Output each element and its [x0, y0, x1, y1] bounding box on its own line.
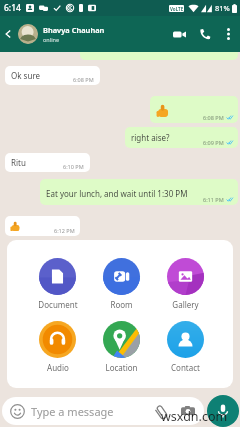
button[interactable]: Room [89, 258, 153, 310]
staticText: 6:10 PM [63, 163, 84, 170]
button[interactable]: Record voice message [207, 395, 239, 427]
button[interactable]: Video call [166, 21, 192, 47]
button[interactable]: Back [0, 25, 18, 43]
button[interactable]: Call [192, 21, 218, 47]
button[interactable]: Attach [151, 401, 171, 421]
staticText: Ritu [11, 157, 26, 168]
button[interactable]: Audio [26, 321, 89, 373]
staticText: Eat your lunch, and wait until 1:30 PM [46, 188, 188, 199]
button[interactable]: Location [89, 321, 153, 373]
staticText: VoLTE [170, 6, 184, 12]
staticText: Audio [47, 362, 69, 373]
staticText: 6:14 [4, 2, 21, 14]
staticText: 6:11 PM [203, 196, 224, 203]
button[interactable]: Camera [178, 401, 198, 421]
staticText: Location [105, 362, 138, 373]
staticText: right aise? [131, 132, 170, 143]
staticText: Type a message [31, 404, 114, 419]
staticText: Ok sure [11, 70, 41, 81]
staticText: 6:08 PM [73, 76, 94, 83]
staticText: Document [38, 299, 78, 310]
button[interactable]: Type a message [2, 397, 204, 425]
staticText: 6:09 PM [203, 139, 224, 146]
staticText: Gallery [172, 299, 199, 310]
staticText: 6:12 PM [54, 227, 75, 234]
staticText: Bhavya Chauhan [43, 25, 105, 35]
staticText: Room [110, 299, 133, 310]
staticText: wsxdn.com [161, 408, 228, 425]
button[interactable]: Document [26, 258, 89, 310]
staticText: Contact [171, 362, 200, 373]
button[interactable]: Contact [153, 321, 217, 373]
staticText: online [43, 36, 60, 43]
staticText: 81% [215, 3, 230, 13]
staticText: 6:08 PM [203, 114, 224, 121]
button[interactable]: Gallery [153, 258, 217, 310]
button[interactable]: More options [218, 24, 238, 44]
